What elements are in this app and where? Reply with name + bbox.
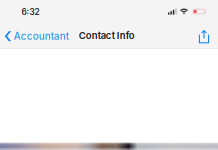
- staticText: Contact Info: [79, 30, 135, 41]
- staticText: 6:32: [22, 7, 40, 17]
- button[interactable]: Accountant: [1, 26, 73, 46]
- button[interactable]: Share: [194, 27, 214, 46]
- staticText: Accountant: [14, 30, 69, 42]
